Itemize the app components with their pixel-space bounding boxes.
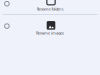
button[interactable]: Rename folders [0,2,100,16]
button[interactable]: Rename images [0,21,100,35]
staticText: Rename folders [36,6,63,12]
staticText: Rename images [36,30,64,35]
